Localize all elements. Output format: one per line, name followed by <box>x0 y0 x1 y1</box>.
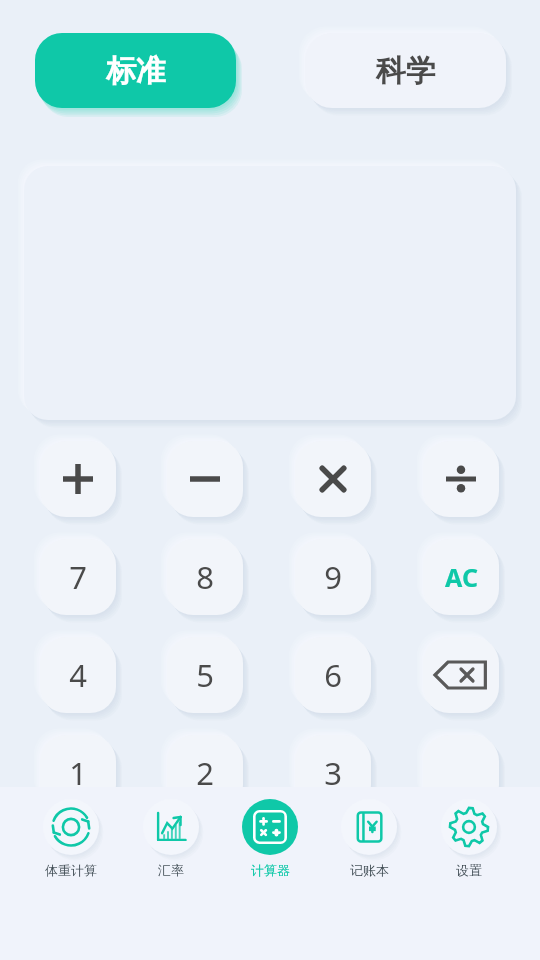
staticText: 8 <box>196 556 214 598</box>
button[interactable]: 体重计算 <box>43 787 99 878</box>
staticText: 标准 <box>106 52 166 90</box>
button[interactable]: 7 <box>40 539 116 615</box>
button[interactable]: 记账本 <box>341 787 397 878</box>
staticText: 2 <box>196 752 214 794</box>
staticText: 汇率 <box>158 862 184 878</box>
button[interactable]: Divide <box>423 441 499 517</box>
button[interactable]: 6 <box>295 637 371 713</box>
staticText: 3 <box>324 752 342 794</box>
staticText: 7 <box>69 556 87 598</box>
button[interactable]: 8 <box>167 539 243 615</box>
button[interactable]: 标准 <box>35 33 236 108</box>
staticText: 科学 <box>376 52 436 90</box>
button[interactable]: Minus <box>167 441 243 517</box>
staticText: 5 <box>196 654 214 696</box>
button[interactable]: All clear <box>423 539 499 615</box>
staticText: AC <box>445 560 478 594</box>
button[interactable] <box>423 735 499 811</box>
staticText: 1 <box>69 752 87 794</box>
staticText: 4 <box>69 654 87 696</box>
staticText: 设置 <box>456 862 482 878</box>
button[interactable]: 4 <box>40 637 116 713</box>
button[interactable]: 汇率 <box>143 787 199 878</box>
button[interactable]: 计算器 <box>242 787 298 878</box>
button[interactable]: 2 <box>167 735 243 811</box>
staticText: 记账本 <box>350 862 389 878</box>
button[interactable]: Plus <box>40 441 116 517</box>
button[interactable]: 3 <box>295 735 371 811</box>
button[interactable]: Multiply <box>295 441 371 517</box>
button[interactable]: 5 <box>167 637 243 713</box>
staticText: 9 <box>324 556 342 598</box>
staticText: 体重计算 <box>45 862 97 878</box>
button[interactable]: 设置 <box>441 787 497 878</box>
button[interactable]: Backspace <box>423 637 499 713</box>
staticText: 计算器 <box>251 862 290 878</box>
button[interactable]: 9 <box>295 539 371 615</box>
button[interactable]: 1 <box>40 735 116 811</box>
staticText: 6 <box>324 654 342 696</box>
button[interactable]: 科学 <box>305 33 506 108</box>
